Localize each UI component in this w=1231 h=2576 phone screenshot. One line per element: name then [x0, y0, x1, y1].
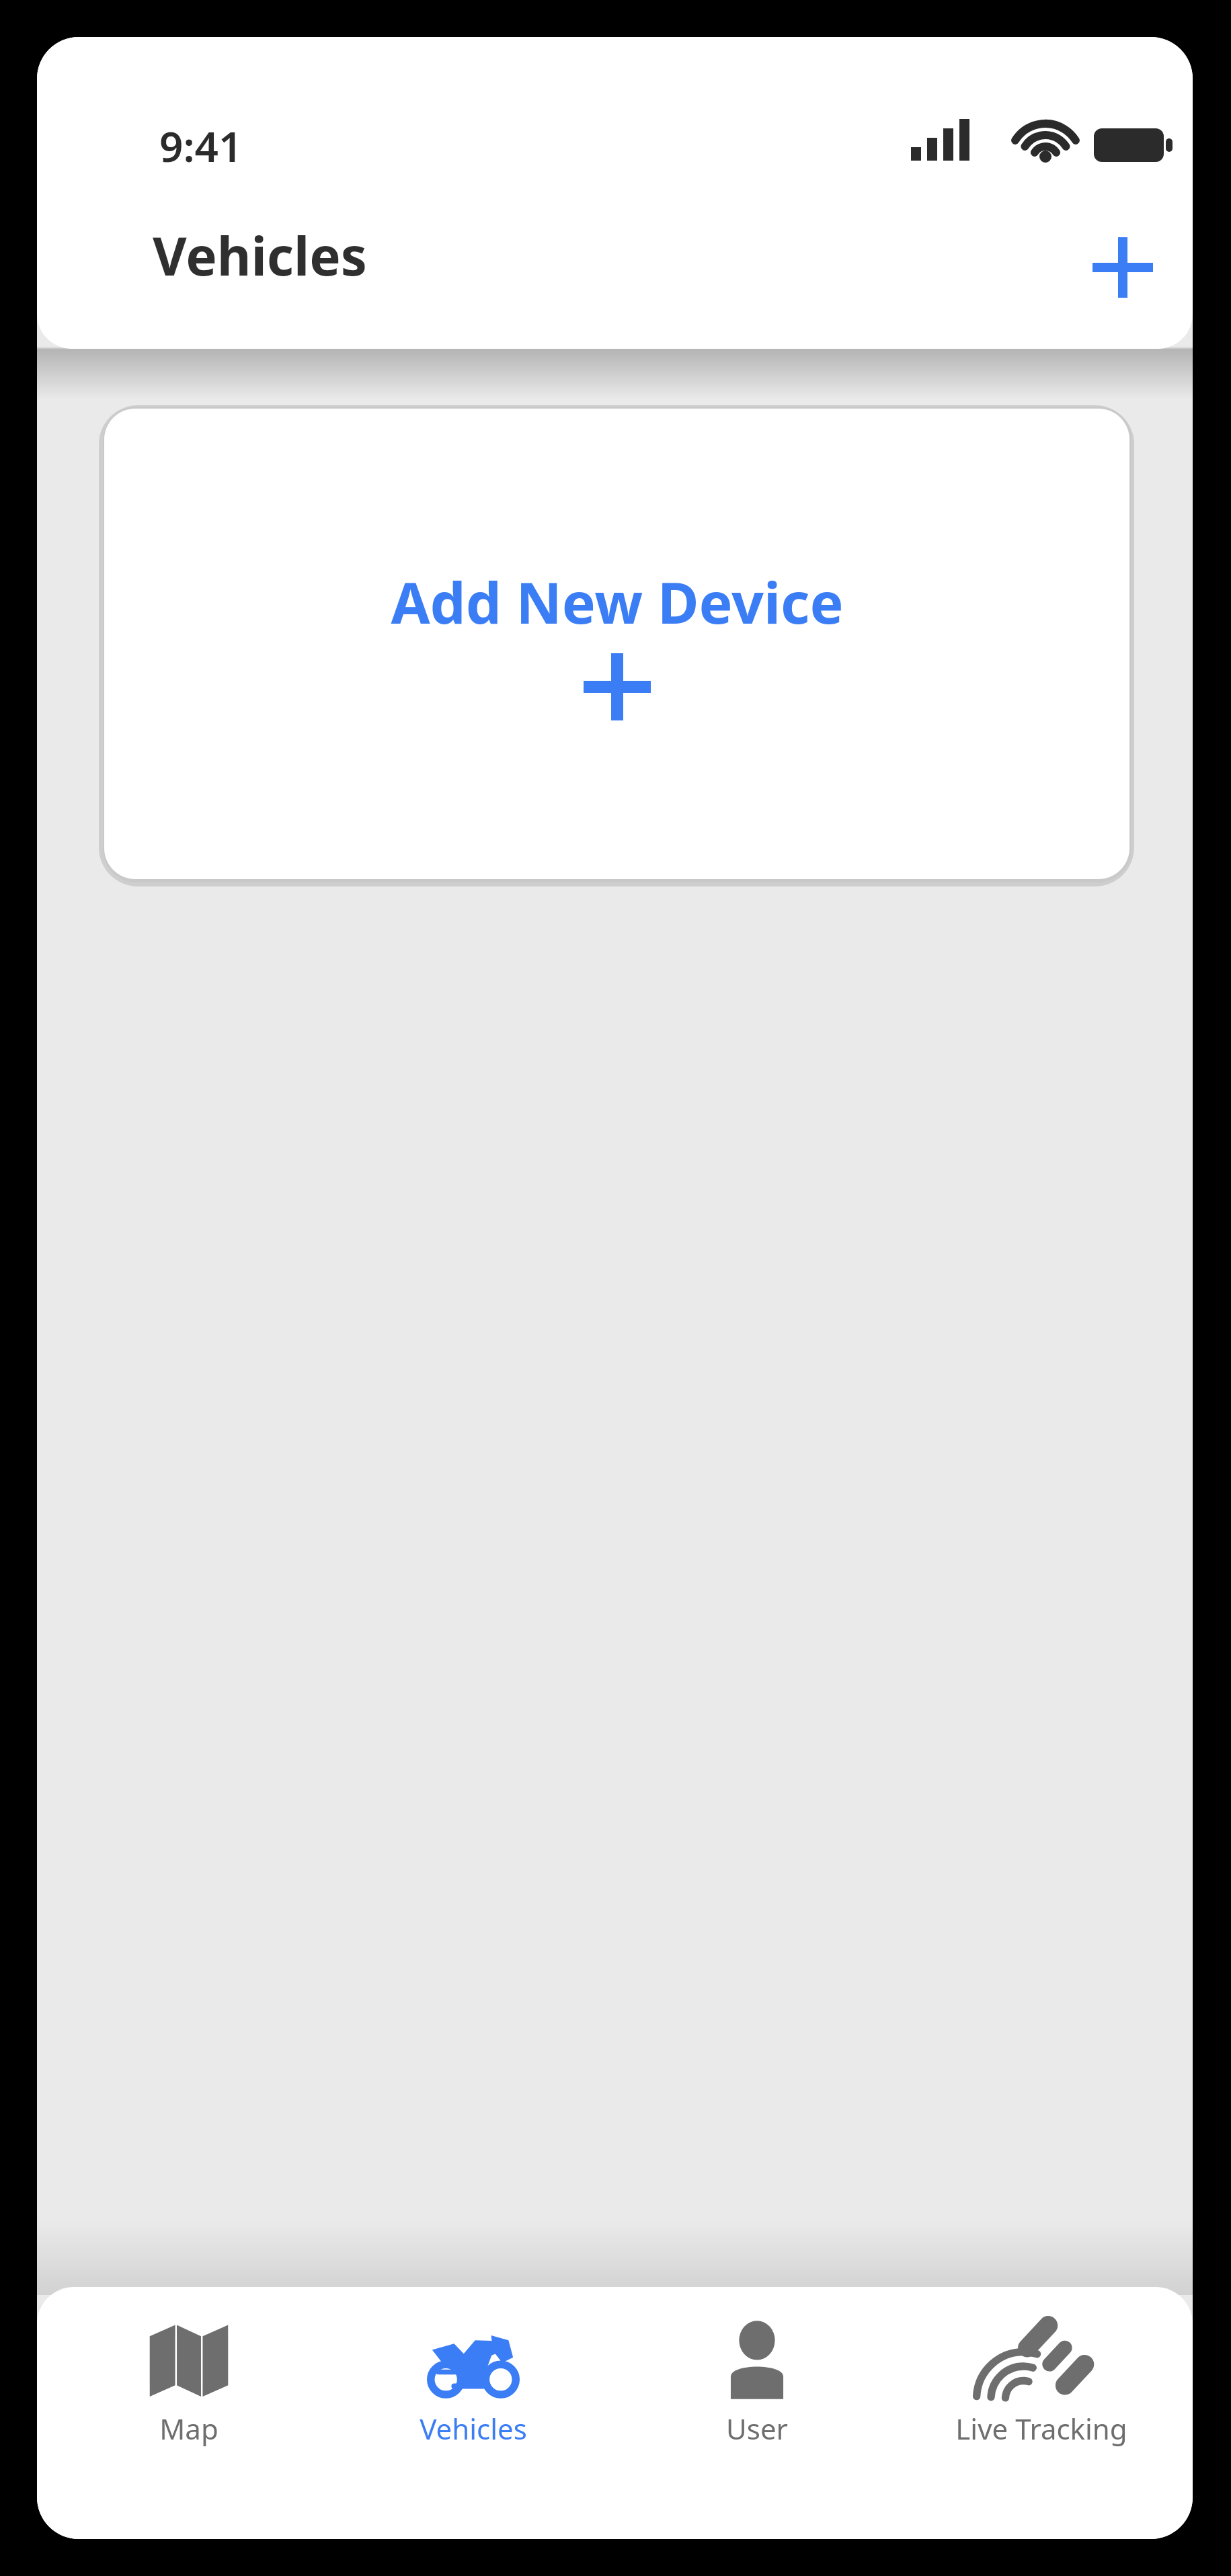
staticText: Live Tracking: [955, 2409, 1127, 2448]
staticText: Vehicles: [420, 2409, 527, 2448]
staticText: Add New Device: [391, 563, 844, 640]
staticText: User: [726, 2409, 788, 2448]
button[interactable]: Add vehicle: [1059, 204, 1187, 331]
staticText: Vehicles: [153, 220, 367, 291]
button[interactable]: Map: [56, 2300, 321, 2475]
staticText: Map: [159, 2409, 219, 2448]
button[interactable]: Live Tracking: [908, 2300, 1174, 2475]
button[interactable]: Vehicles: [340, 2300, 606, 2475]
button[interactable]: User: [624, 2300, 889, 2475]
button[interactable]: Add New Device: [104, 409, 1129, 879]
staticText: 9:41: [159, 118, 243, 174]
